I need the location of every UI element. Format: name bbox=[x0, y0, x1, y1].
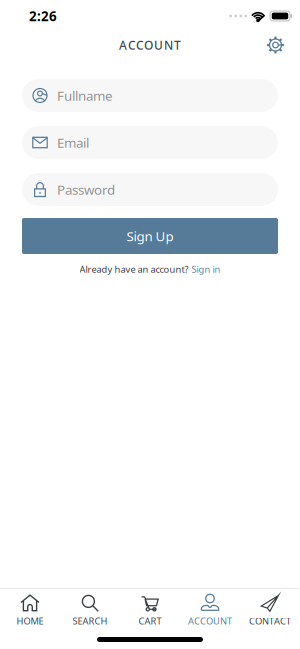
staticText: ACCOUNT bbox=[188, 615, 232, 627]
staticText: 2:26 bbox=[29, 7, 57, 25]
button[interactable]: Settings bbox=[266, 35, 285, 54]
staticText: CONTACT bbox=[249, 615, 291, 627]
button[interactable]: Sign Up bbox=[22, 218, 278, 254]
staticText: HOME bbox=[16, 615, 43, 627]
staticText: Already have an account? bbox=[79, 263, 188, 275]
staticText: Sign in bbox=[191, 263, 220, 275]
button[interactable]: ACCOUNT bbox=[180, 594, 240, 627]
staticText: ACCOUNT bbox=[119, 37, 181, 53]
staticText: SEARCH bbox=[72, 615, 107, 627]
staticText: Sign Up bbox=[126, 227, 173, 245]
staticText: Fullname bbox=[57, 87, 113, 104]
staticText: Password bbox=[57, 181, 115, 198]
staticText: Email bbox=[57, 134, 89, 151]
button[interactable]: Password bbox=[22, 173, 278, 206]
button[interactable]: CART bbox=[120, 594, 180, 627]
staticText: CART bbox=[138, 615, 161, 627]
button[interactable]: Email bbox=[22, 126, 278, 159]
button[interactable]: SEARCH bbox=[60, 594, 120, 627]
button[interactable]: Sign in bbox=[191, 263, 220, 275]
button[interactable]: Fullname bbox=[22, 79, 278, 112]
button[interactable]: CONTACT bbox=[240, 594, 300, 627]
button[interactable]: HOME bbox=[0, 594, 60, 627]
